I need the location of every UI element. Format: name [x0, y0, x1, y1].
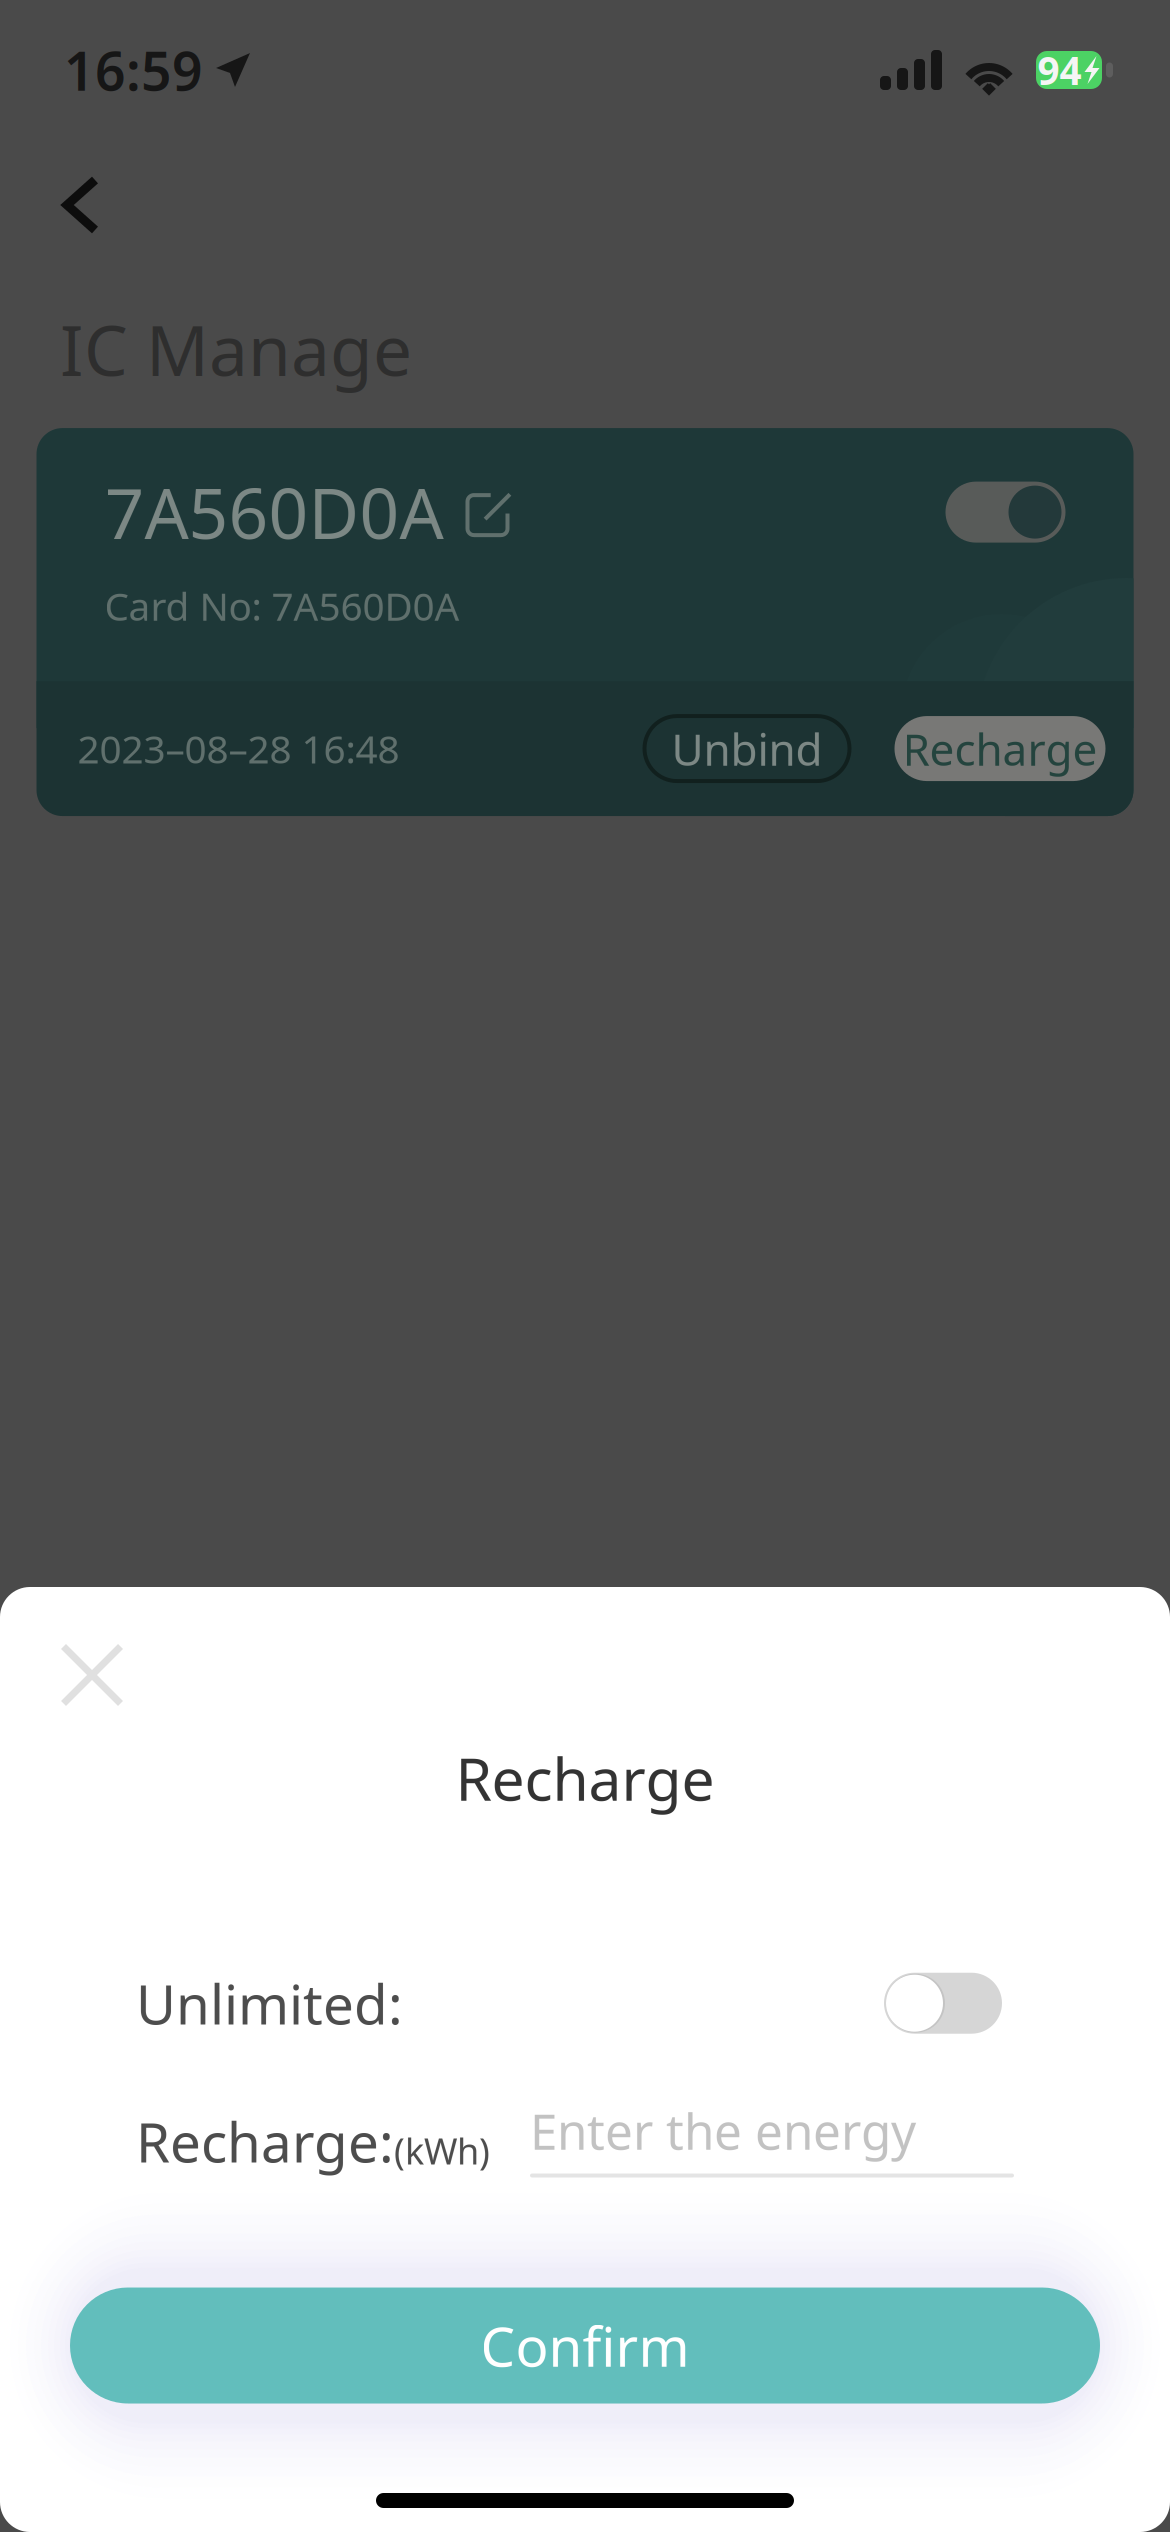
- staticText: 16:59: [64, 35, 203, 105]
- button[interactable]: Unbind: [644, 716, 849, 781]
- button[interactable]: Recharge: [894, 716, 1105, 781]
- button[interactable]: Rename card: [443, 489, 511, 535]
- staticText: Recharge: [455, 1739, 714, 1817]
- staticText: 7A560D0A: [104, 466, 443, 558]
- button[interactable]: Confirm: [70, 2287, 1100, 2403]
- staticText: Confirm: [480, 2309, 689, 2382]
- staticText: Enter the energy: [530, 2098, 916, 2163]
- staticText: Unlimited:: [136, 1967, 403, 2039]
- staticText: Card No: 7A560D0A: [104, 580, 459, 631]
- staticText: Recharge: [902, 719, 1097, 778]
- staticText: IC Manage: [60, 303, 412, 395]
- button[interactable]: Card enabled: [945, 482, 1065, 543]
- staticText: (kWh): [394, 2127, 490, 2174]
- button[interactable]: Close: [50, 1633, 134, 1717]
- staticText: Unbind: [671, 719, 822, 778]
- staticText: 2023–08–28 16:48: [77, 723, 399, 774]
- staticText: 94: [1037, 44, 1081, 96]
- button[interactable]: Back: [36, 160, 126, 250]
- button[interactable]: Unlimited: [884, 1973, 1002, 2034]
- staticText: Recharge:: [136, 2105, 394, 2177]
